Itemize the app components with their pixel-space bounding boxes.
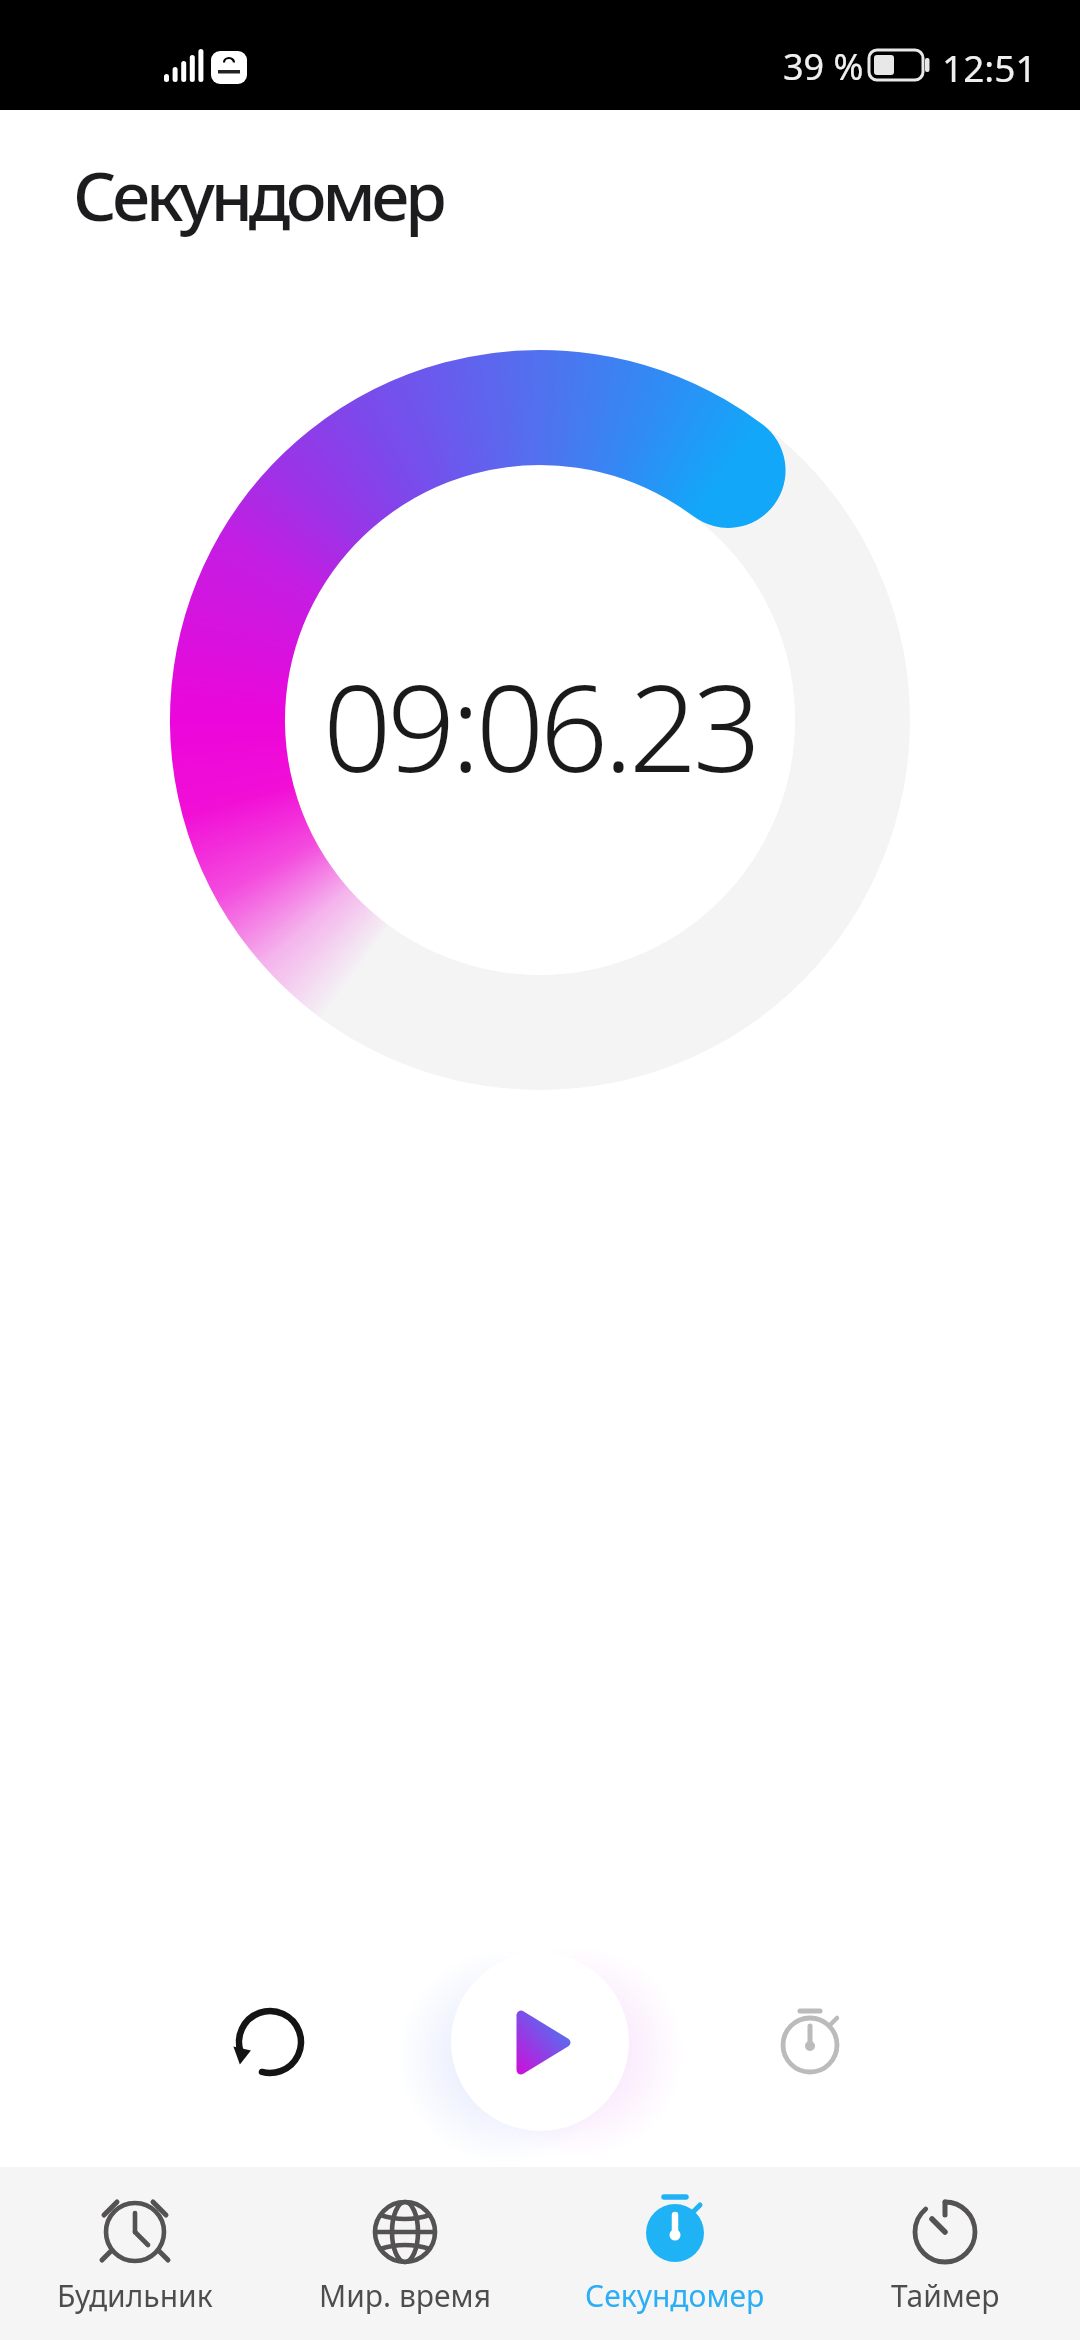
button[interactable]: [750, 1982, 870, 2102]
staticText: Секундомер: [585, 2275, 765, 2316]
staticText: Таймер: [891, 2275, 1000, 2316]
staticText: 12:51: [942, 42, 1037, 92]
staticText: Секундомер: [73, 148, 443, 241]
staticText: 39 %: [783, 42, 864, 91]
staticText: Мир. время: [319, 2275, 491, 2316]
button[interactable]: Будильник: [0, 2167, 270, 2340]
button[interactable]: Таймер: [810, 2167, 1080, 2340]
staticText: 09:06.23: [323, 644, 757, 807]
button[interactable]: Секундомер: [540, 2167, 810, 2340]
button[interactable]: Мир. время: [270, 2167, 540, 2340]
button[interactable]: [451, 1953, 629, 2131]
staticText: Будильник: [57, 2275, 213, 2316]
button[interactable]: [210, 1982, 330, 2102]
